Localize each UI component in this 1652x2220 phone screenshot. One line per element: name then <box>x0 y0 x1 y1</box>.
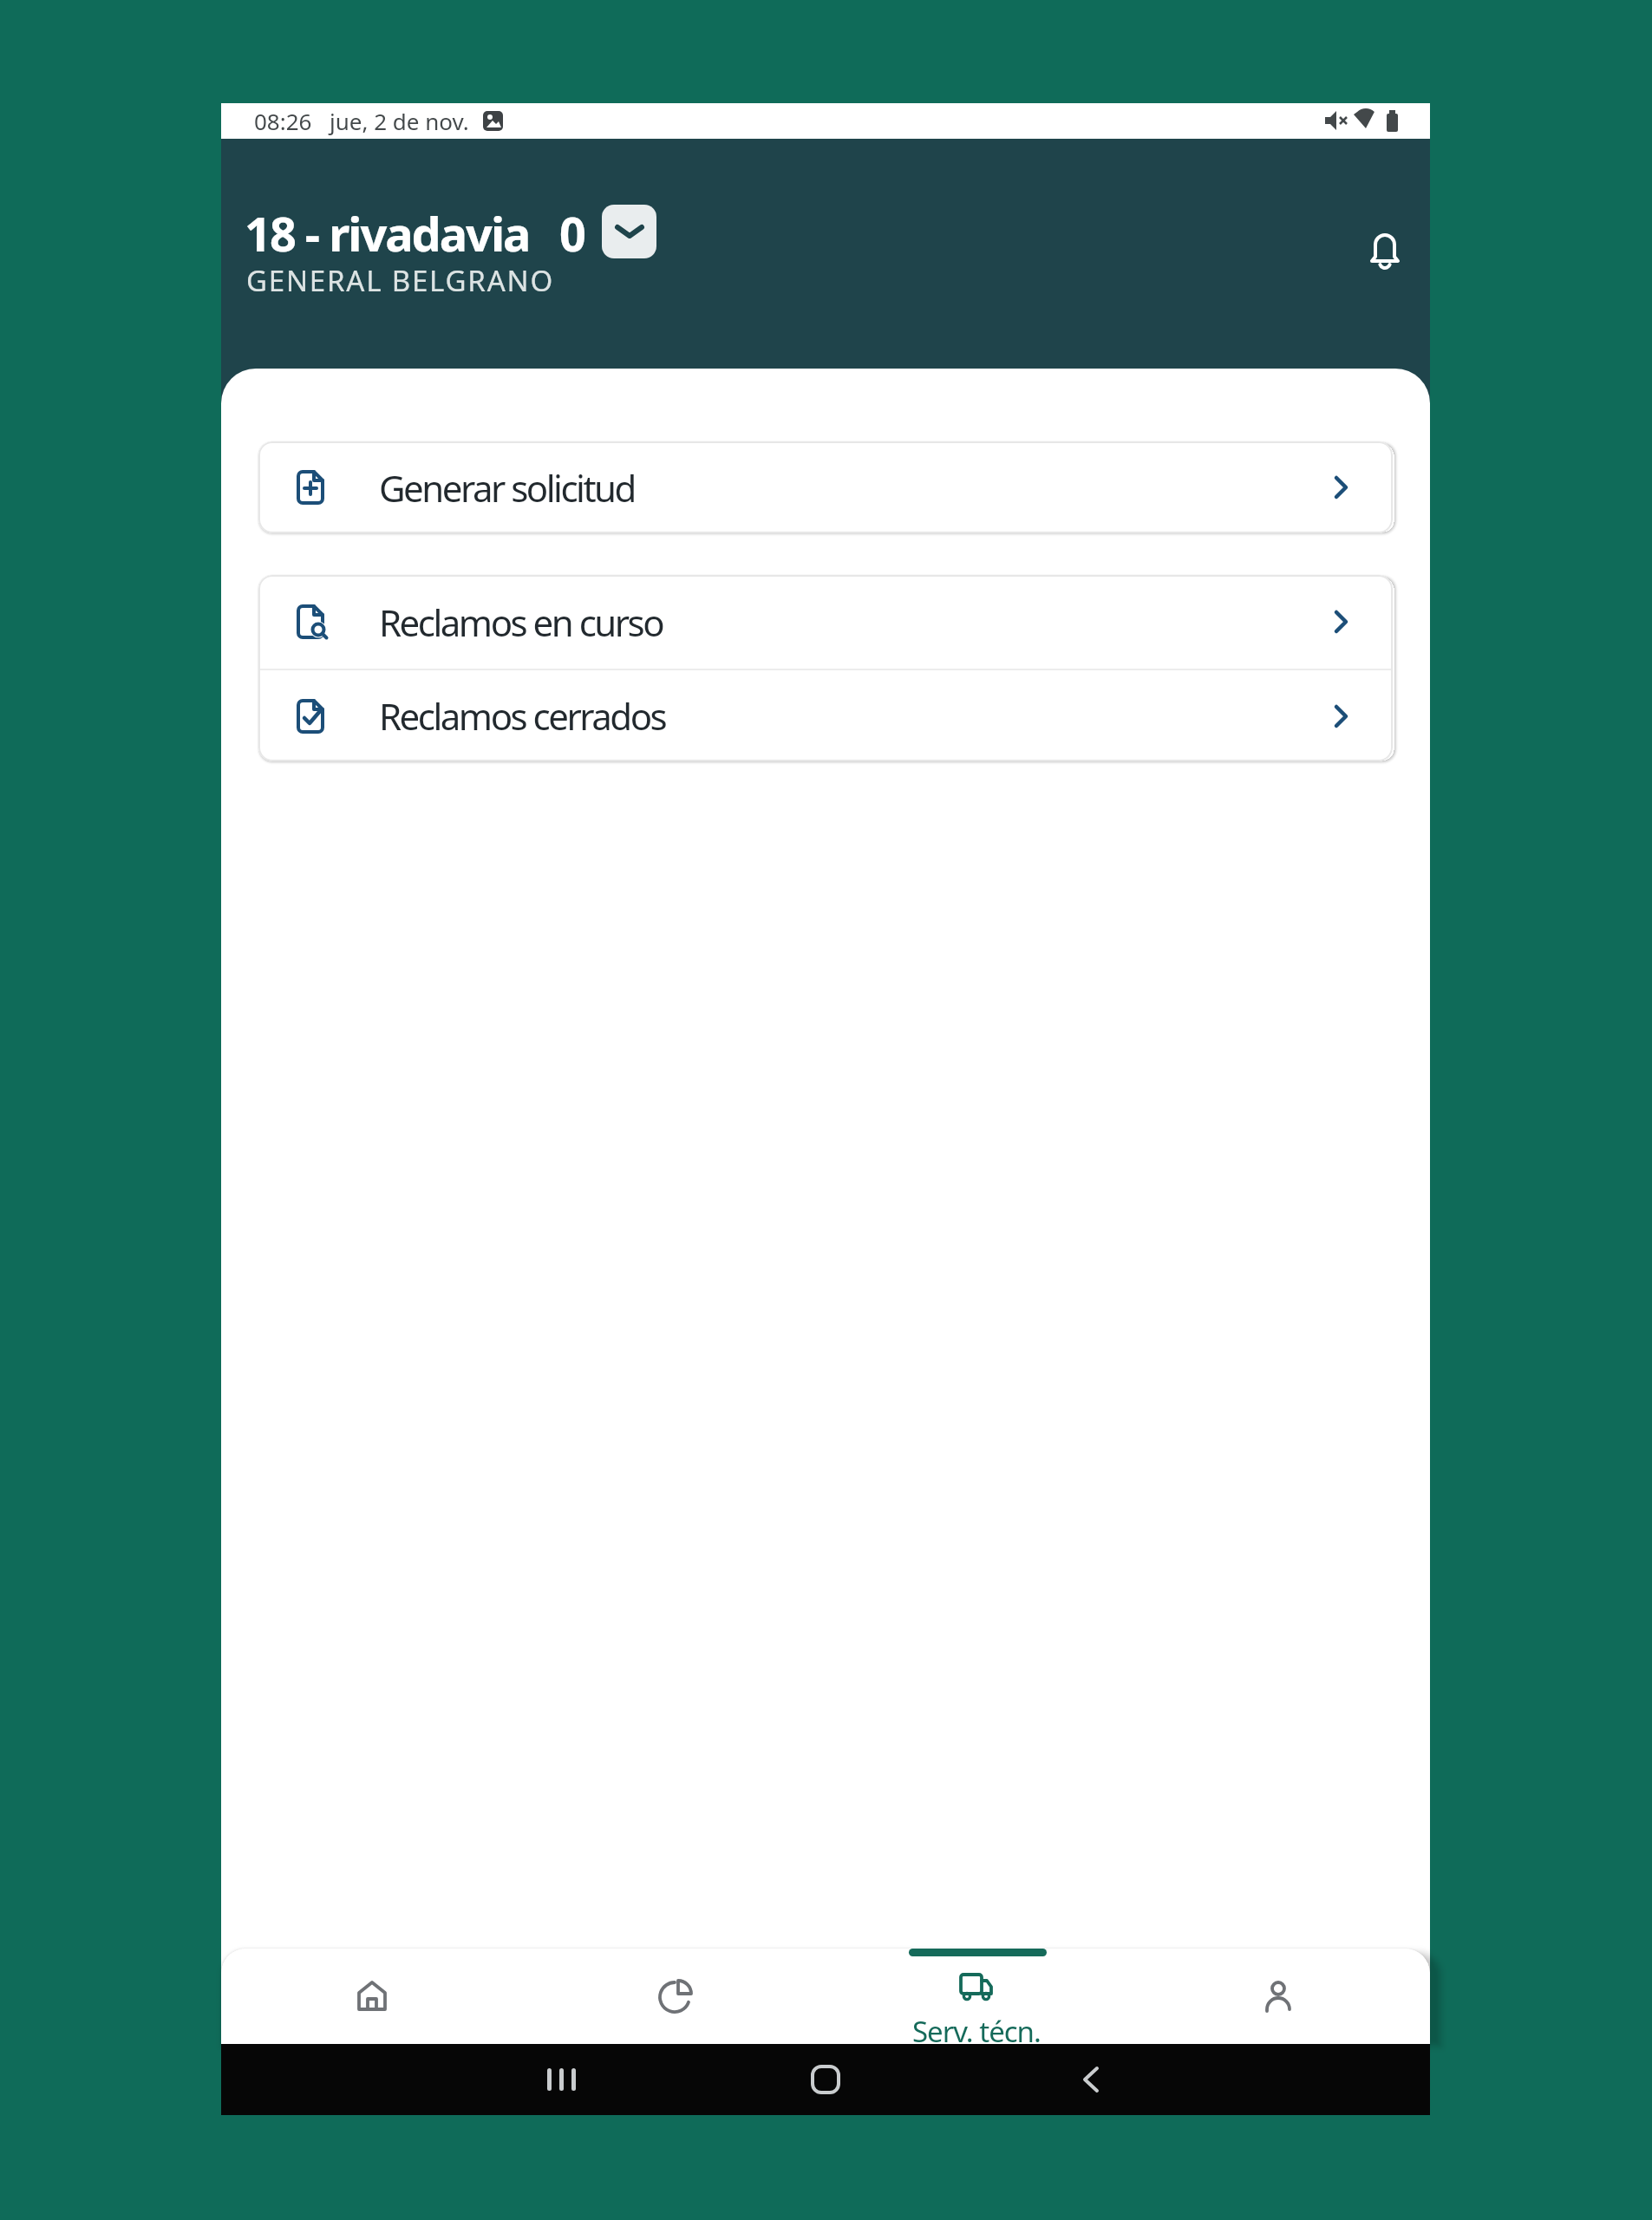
button[interactable]: Generar solicitud <box>258 441 1393 533</box>
button[interactable] <box>1226 1949 1330 2044</box>
button[interactable] <box>602 205 656 258</box>
button[interactable] <box>221 2044 624 2115</box>
staticText: Reclamos en curso <box>379 597 663 647</box>
button[interactable]: Serv. técn. <box>907 1949 1046 2044</box>
staticText: GENERAL BELGRANO <box>246 261 555 297</box>
button[interactable] <box>320 1949 424 2044</box>
staticText: Reclamos cerrados <box>379 691 666 741</box>
staticText: 0 <box>559 201 584 260</box>
button[interactable] <box>1027 2044 1430 2115</box>
button[interactable]: Reclamos en curso <box>258 575 1393 669</box>
button[interactable]: Reclamos cerrados <box>258 670 1393 761</box>
staticText: Serv. técn. <box>912 2012 1041 2043</box>
button[interactable] <box>1359 225 1411 277</box>
button[interactable] <box>624 2044 1027 2115</box>
staticText: 08:26 <box>254 106 312 136</box>
staticText: jue, 2 de nov. <box>330 106 469 136</box>
staticText: Generar solicitud <box>379 463 635 513</box>
button[interactable] <box>624 1949 728 2044</box>
staticText: 18 - rivadavia <box>245 201 530 260</box>
